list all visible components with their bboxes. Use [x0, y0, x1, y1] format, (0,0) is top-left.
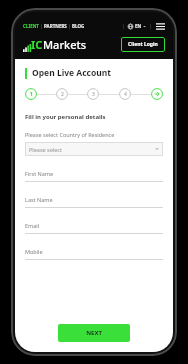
staticText: EN	[135, 23, 142, 29]
staticText: Markets	[43, 37, 87, 52]
staticText: IC	[31, 37, 43, 52]
button[interactable]: BLOG	[72, 23, 85, 29]
staticText: Email	[25, 222, 40, 229]
staticText: First Name	[25, 170, 54, 177]
staticText: 4	[124, 91, 127, 98]
button[interactable]: IC	[23, 37, 87, 52]
staticText: Please select Country of Residence	[25, 131, 115, 138]
button[interactable]: 1	[25, 88, 37, 100]
staticText: Client Login	[128, 41, 158, 48]
staticText: Fill in your personal details	[25, 113, 106, 121]
button[interactable]: First Name	[25, 170, 163, 182]
button[interactable]: 3	[87, 88, 99, 100]
staticText: |	[39, 23, 44, 29]
button[interactable]: Menu	[155, 21, 165, 31]
button[interactable]: NEXT	[58, 324, 130, 342]
button[interactable]: 2	[56, 88, 68, 100]
button[interactable]: Next step	[151, 88, 163, 100]
staticText: 3	[92, 91, 95, 98]
staticText: Open Live Account	[32, 67, 112, 79]
button[interactable]: Please select	[25, 142, 163, 156]
staticText: |	[67, 23, 72, 29]
button[interactable]: Mobile	[25, 248, 163, 260]
staticText: 1	[30, 91, 33, 98]
staticText: Last Name	[25, 196, 53, 203]
button[interactable]: CLIENT	[23, 23, 39, 29]
button[interactable]: PARTNERS	[44, 23, 67, 29]
button[interactable]: Email	[25, 222, 163, 234]
button[interactable]: Client Login	[121, 37, 165, 52]
staticText: |	[149, 23, 152, 30]
staticText: NEXT	[86, 329, 102, 337]
staticText: Mobile	[25, 248, 43, 255]
button[interactable]: EN	[128, 23, 146, 29]
staticText: Please select	[29, 146, 62, 153]
staticText: 2	[61, 91, 64, 98]
staticText: |	[122, 23, 125, 30]
button[interactable]: Last Name	[25, 196, 163, 208]
button[interactable]: 4	[119, 88, 131, 100]
